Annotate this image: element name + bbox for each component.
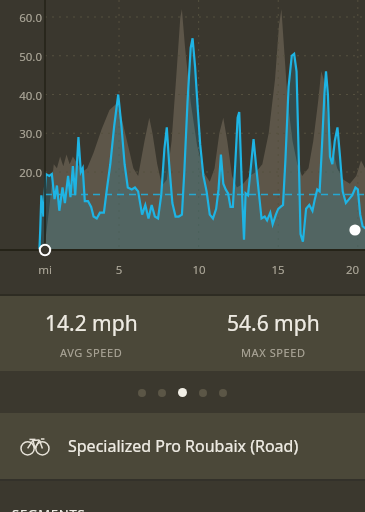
staticText: 60.0 [4, 10, 42, 26]
staticText: 30.0 [4, 126, 42, 142]
staticText: 40.0 [4, 88, 42, 104]
staticText: 5 [101, 262, 137, 278]
button[interactable]: Bike [0, 413, 365, 479]
staticText: Specialized Pro Roubaix (Road) [68, 435, 299, 457]
staticText: 20 [340, 262, 365, 278]
staticText: 14.2 mph [45, 309, 138, 338]
staticText: AVG SPEED [60, 345, 123, 360]
other: Bike [20, 436, 50, 456]
staticText: 15 [260, 262, 296, 278]
staticText: MAX SPEED [241, 345, 306, 360]
button[interactable]: 54.6 mph [182, 296, 365, 360]
staticText: 54.6 mph [227, 309, 320, 338]
staticText: 20.0 [4, 165, 42, 181]
button[interactable]: 14.2 mph [0, 296, 182, 360]
staticText: SEGMENTS [12, 505, 86, 512]
staticText: 50.0 [4, 49, 42, 65]
staticText: 10 [181, 262, 217, 278]
staticText: mi [27, 262, 63, 278]
